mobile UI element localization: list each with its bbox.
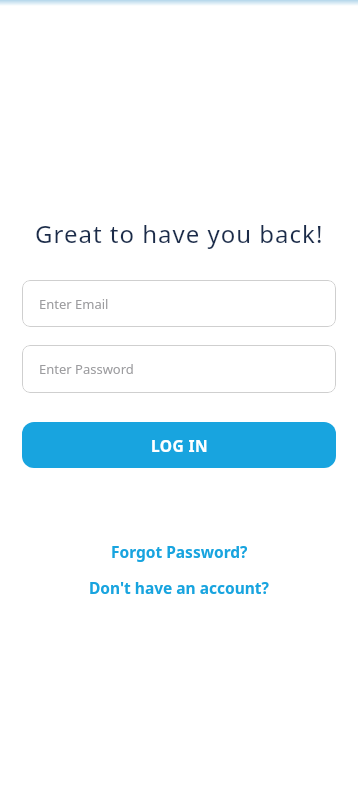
- staticText: Forgot Password?: [111, 541, 248, 562]
- button[interactable]: Enter Email: [22, 280, 336, 327]
- button[interactable]: Forgot Password?: [111, 541, 248, 562]
- button[interactable]: Enter Password: [22, 345, 336, 393]
- staticText: Don't have an account?: [89, 577, 269, 598]
- button[interactable]: Don't have an account?: [89, 577, 269, 598]
- staticText: Great to have you back!: [35, 217, 324, 250]
- staticText: LOG IN: [151, 435, 208, 456]
- staticText: Enter Password: [39, 360, 134, 378]
- button[interactable]: LOG IN: [22, 422, 336, 468]
- staticText: Enter Email: [39, 295, 109, 313]
